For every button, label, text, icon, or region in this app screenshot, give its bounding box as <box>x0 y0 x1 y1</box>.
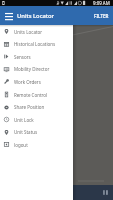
button[interactable]: Open navigation drawer <box>2 9 15 22</box>
button[interactable]: Historical Locations <box>0 38 73 50</box>
button[interactable]: logout <box>0 138 73 151</box>
staticText: FILTER <box>94 13 109 19</box>
staticText: logout <box>14 142 28 148</box>
button[interactable]: Sensors <box>0 50 73 63</box>
button[interactable]: Work Orders <box>0 75 73 88</box>
staticText: Sensors <box>14 54 31 60</box>
button[interactable]: Remote Control <box>0 88 73 101</box>
staticText: Unit Lock <box>14 117 34 123</box>
staticText: Remote Control <box>14 92 48 98</box>
button[interactable]: Unit Status <box>0 126 73 138</box>
staticText: Share Position <box>14 104 45 110</box>
button[interactable]: Recent apps <box>100 187 111 198</box>
staticText: Units Locator <box>17 12 55 20</box>
button[interactable]: Units Locator <box>0 25 73 38</box>
button[interactable]: FILTER <box>93 10 110 22</box>
button[interactable]: Unit Lock <box>0 113 73 126</box>
staticText: 9:09 AM <box>93 0 110 6</box>
staticText: Unit Status <box>14 129 38 135</box>
staticText: Mobility Director <box>14 66 50 72</box>
button[interactable]: Share Position <box>0 101 73 113</box>
button[interactable]: Mobility Director <box>0 63 73 75</box>
staticText: Work Orders <box>14 79 41 85</box>
staticText: Units Locator <box>14 29 43 35</box>
staticText: Historical Locations <box>14 41 56 47</box>
